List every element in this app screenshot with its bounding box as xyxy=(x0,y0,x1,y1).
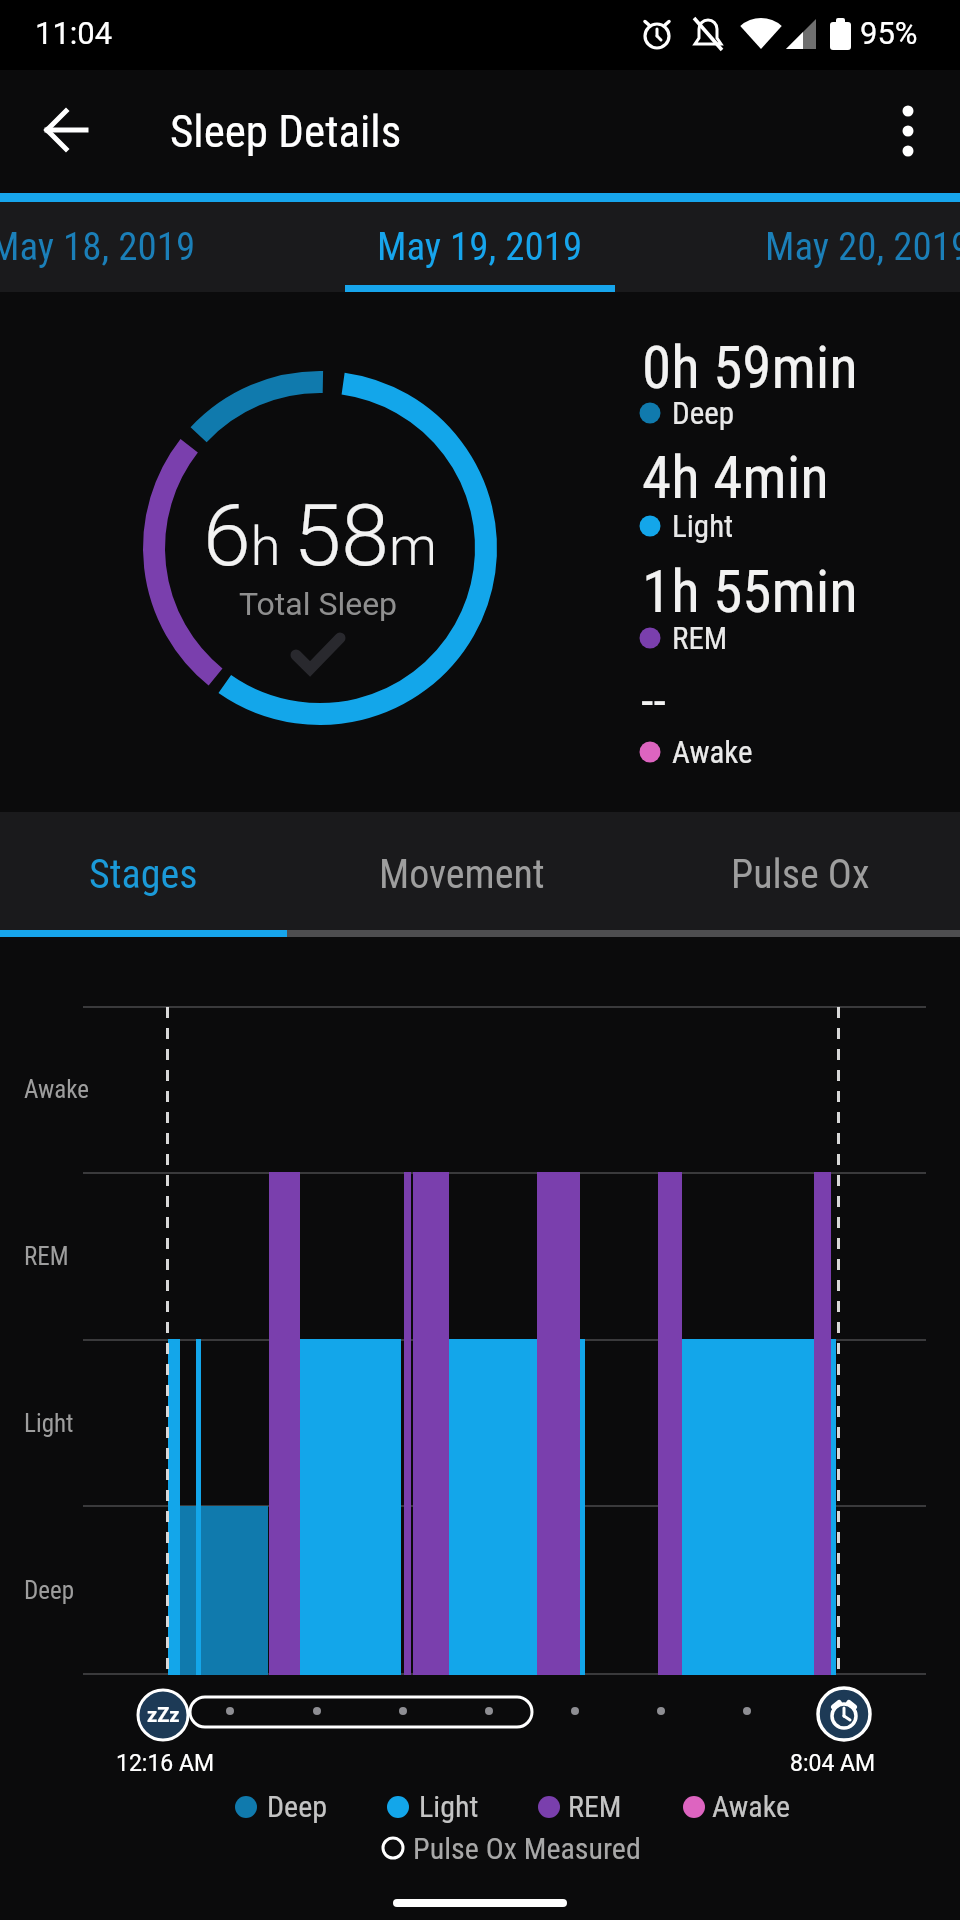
staticText: Deep xyxy=(24,1576,75,1605)
staticText: Awake xyxy=(24,1075,89,1104)
button[interactable]: Stages xyxy=(0,812,287,937)
button[interactable] xyxy=(864,87,952,175)
staticText: May 18, 2019 xyxy=(0,224,196,270)
button[interactable]: May 19, 2019 xyxy=(355,202,605,292)
button[interactable]: May 18, 2019 xyxy=(0,202,218,292)
staticText: 1h 55min xyxy=(642,557,858,626)
staticText: May 19, 2019 xyxy=(377,224,583,270)
staticText: Deep xyxy=(267,1789,328,1824)
staticText: Pulse Ox Measured xyxy=(413,1831,641,1866)
staticText: 95% xyxy=(860,15,918,51)
staticText: Movement xyxy=(379,851,545,898)
staticText: Pulse Ox xyxy=(731,851,870,898)
staticText: Total Sleep xyxy=(239,585,398,623)
staticText: Light xyxy=(24,1409,74,1438)
staticText: zZz xyxy=(147,1703,180,1726)
staticText: REM xyxy=(568,1789,622,1824)
staticText: 12:16 AM xyxy=(116,1750,215,1777)
staticText: Sleep Details xyxy=(170,105,402,158)
staticText: -- xyxy=(641,672,666,731)
button[interactable]: Movement xyxy=(292,812,632,937)
staticText: 0h 59min xyxy=(642,333,858,402)
staticText: Awake xyxy=(672,734,753,770)
staticText: Light xyxy=(419,1789,479,1824)
staticText: Deep xyxy=(672,395,735,431)
staticText: 8:04 AM xyxy=(790,1750,876,1777)
staticText: REM xyxy=(672,620,728,656)
staticText: 6h 58m xyxy=(203,485,437,586)
staticText: May 20, 2019 xyxy=(765,224,960,270)
staticText: Awake xyxy=(712,1789,790,1824)
staticText: REM xyxy=(24,1242,69,1271)
button[interactable] xyxy=(22,87,110,175)
button[interactable]: Pulse Ox xyxy=(640,812,960,937)
staticText: 11:04 xyxy=(35,15,113,51)
button[interactable]: May 20, 2019 xyxy=(743,202,960,292)
staticText: 4h 4min xyxy=(642,443,829,512)
staticText: Light xyxy=(672,508,734,544)
staticText: Stages xyxy=(89,851,198,898)
